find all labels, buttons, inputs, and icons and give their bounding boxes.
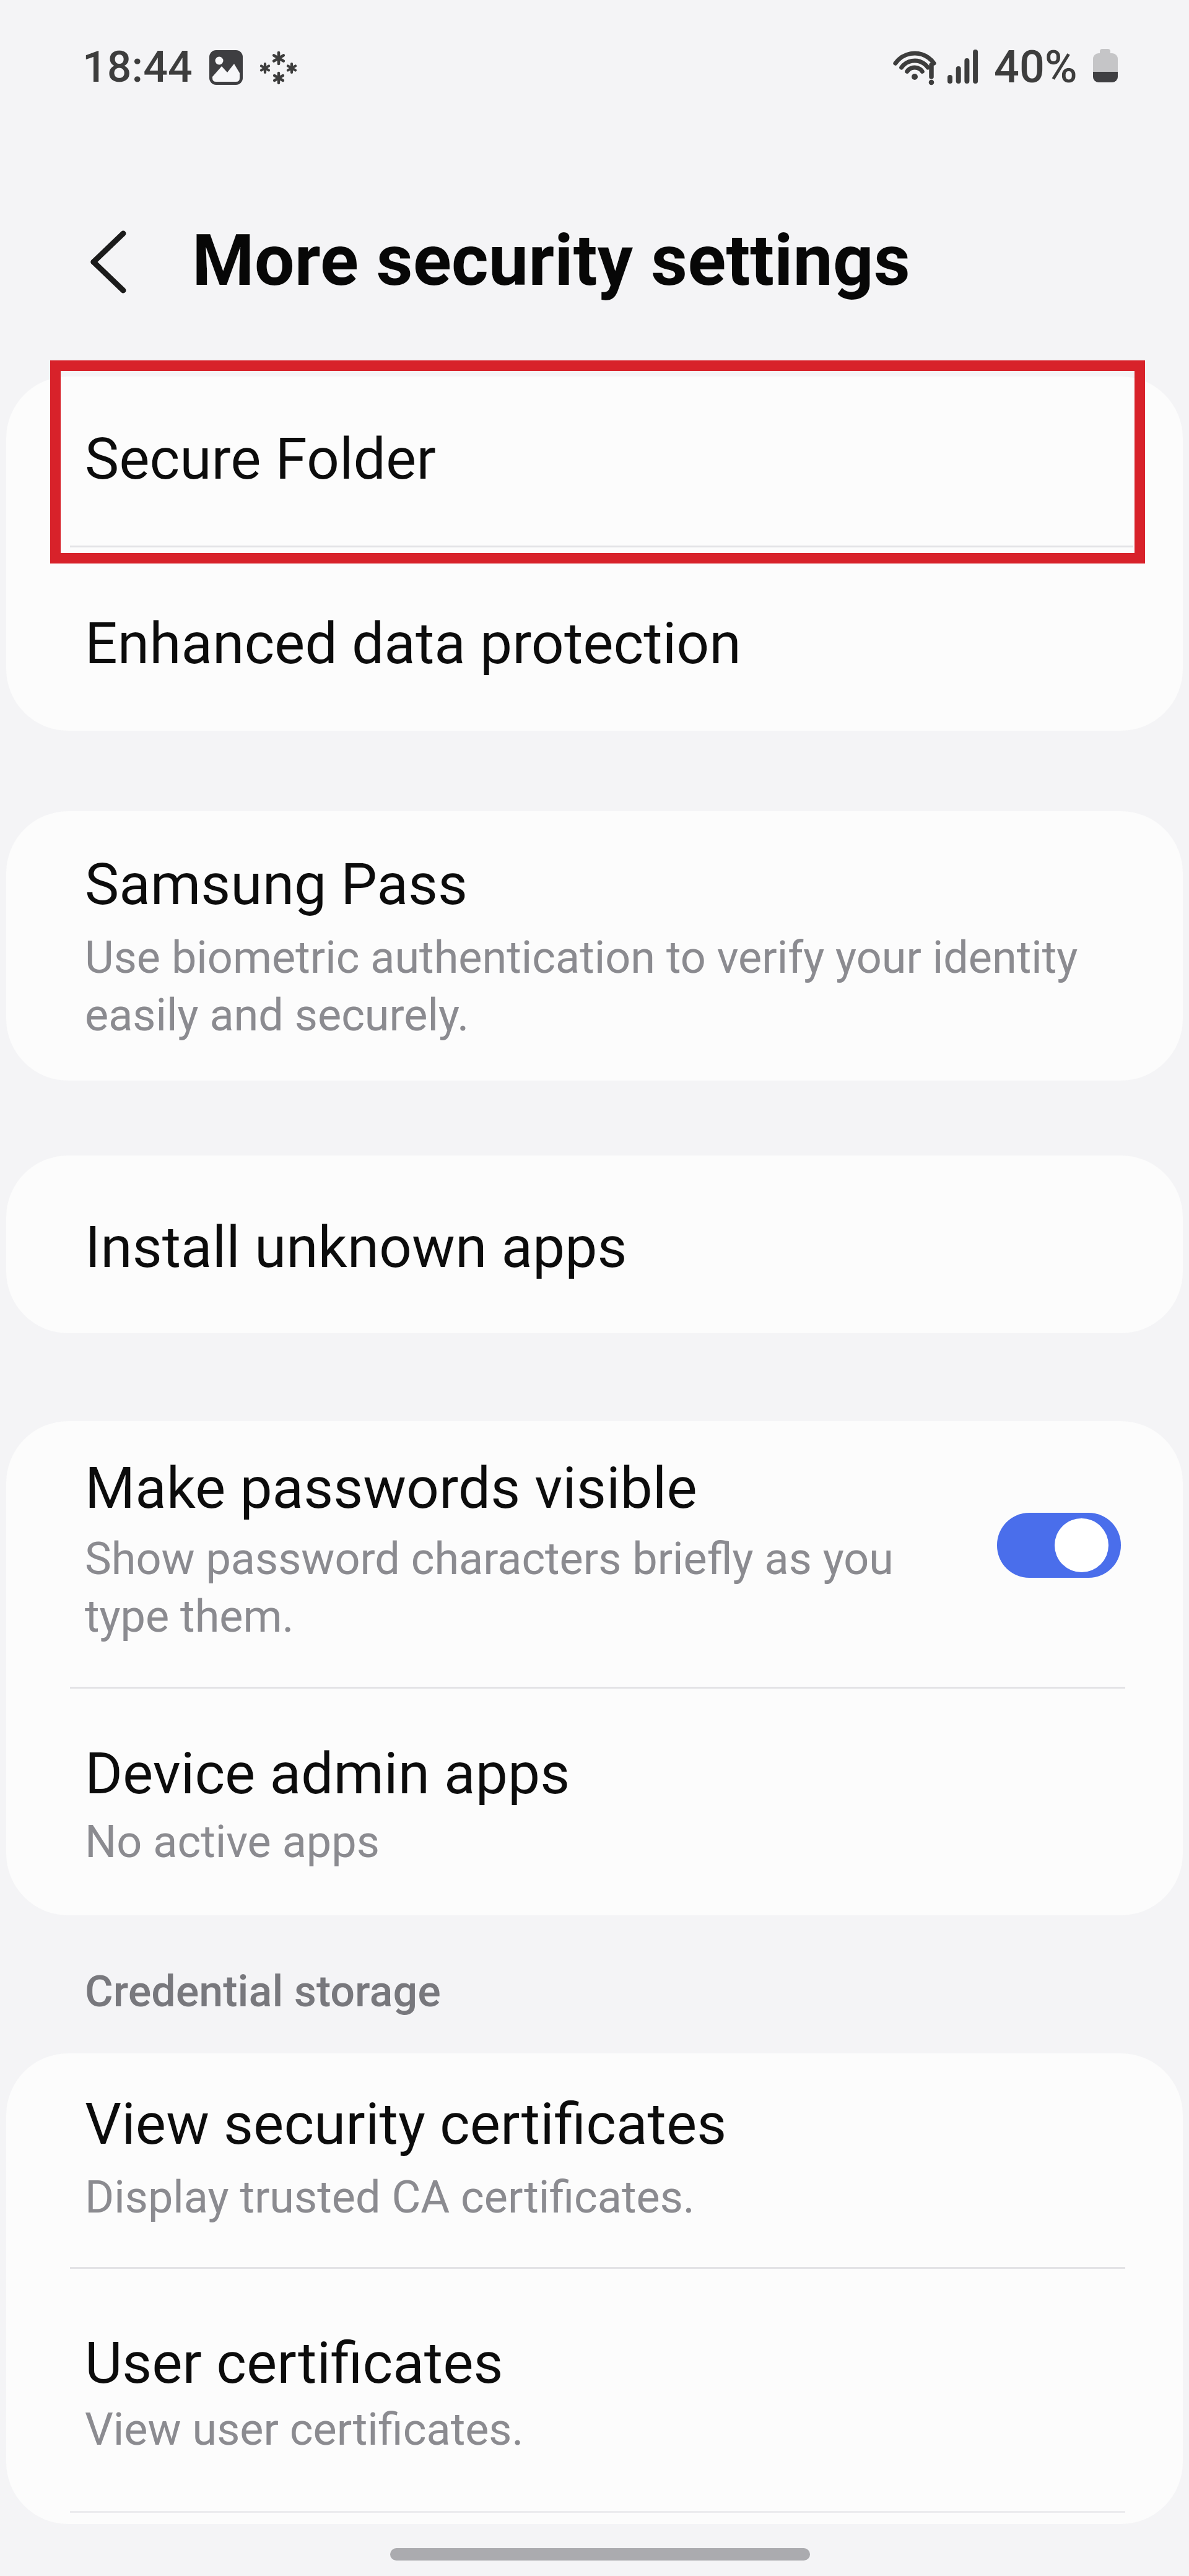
staticText: Device admin apps [85, 1740, 570, 1808]
staticText: View security certificates [85, 2091, 727, 2158]
staticText: Enhanced data protection [85, 610, 741, 677]
staticText: Samsung Pass [85, 851, 468, 918]
staticText: 40% [994, 41, 1078, 93]
button[interactable] [6, 811, 1183, 1081]
staticText: Show password characters briefly as you [85, 1533, 894, 1585]
button[interactable] [6, 1421, 1183, 1687]
staticText: type them. [85, 1590, 294, 1642]
staticText: Credential storage [85, 1966, 441, 2017]
button[interactable] [6, 2268, 1183, 2524]
staticText: User certificates [85, 2330, 503, 2397]
staticText: Make passwords visible [85, 1455, 697, 1522]
button[interactable] [6, 547, 1183, 731]
button[interactable] [6, 2053, 1183, 2268]
staticText: Use biometric authentication to verify y… [85, 931, 1078, 983]
staticText: More security settings [192, 219, 910, 302]
staticText: Secure Folder [85, 425, 436, 493]
staticText: Install unknown apps [85, 1214, 627, 1281]
staticText: No active apps [85, 1816, 380, 1868]
button[interactable] [6, 376, 1183, 547]
button[interactable] [6, 1688, 1183, 1915]
staticText: View user certificates. [85, 2403, 524, 2455]
button[interactable] [74, 217, 167, 310]
staticText: easily and securely. [85, 989, 469, 1041]
staticText: 18:44 [82, 41, 193, 92]
button[interactable] [6, 1155, 1183, 1333]
staticText: Display trusted CA certificates. [85, 2171, 695, 2223]
button[interactable] [997, 1513, 1121, 1578]
